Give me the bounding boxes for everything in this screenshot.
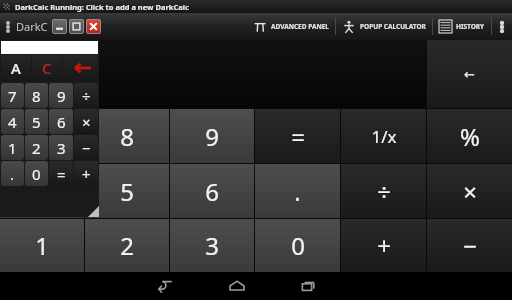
button[interactable]: C [32,55,62,81]
staticText: 7 [35,120,49,153]
button[interactable]: Home [223,272,251,300]
button[interactable]: Close [86,19,101,34]
staticText: DarkC [16,19,48,34]
staticText: 8 [120,120,134,153]
staticText: 5 [32,112,41,132]
button[interactable]: Backspace [427,40,512,108]
button[interactable]: Back [151,272,179,300]
staticText: × [82,112,91,132]
button[interactable]: Backspace [63,55,98,81]
staticText: ÷ [377,175,391,208]
button[interactable]: ÷ [341,164,426,218]
button[interactable]: 5 [25,109,48,134]
staticText: . [10,164,15,184]
button[interactable]: More options [0,13,16,40]
staticText: 3 [57,138,66,158]
button[interactable]: A [1,55,31,81]
staticText: 0 [291,229,305,262]
button[interactable]: % [427,109,512,163]
staticText: 3 [205,229,219,262]
button[interactable]: 4 [1,109,24,134]
button[interactable]: . [1,161,24,186]
button[interactable]: 0 [25,161,48,186]
staticText: 0 [32,164,41,184]
button[interactable]: 6 [170,164,254,218]
button[interactable]: 1 [1,135,24,160]
button[interactable]: × [74,109,98,134]
button[interactable]: HISTORY [433,13,491,40]
staticText: 5 [120,175,134,208]
staticText: + [377,229,391,262]
staticText: × [463,175,477,208]
button[interactable]: 9 [49,83,73,108]
button[interactable]: 8 [85,109,169,163]
button[interactable]: − [74,135,98,160]
staticText: % [460,120,480,153]
staticText: 1 [8,138,17,158]
staticText: DarkCalc Running: Click to add a new Dar… [15,2,189,12]
button[interactable]: ADVANCED PANEL [247,13,335,40]
button[interactable]: = [255,109,340,163]
button[interactable]: 6 [49,109,73,134]
button[interactable]: 7 [1,83,24,108]
staticText: POPUP CALCULATOR [360,22,426,31]
staticText: ADVANCED PANEL [271,22,329,31]
staticText: 9 [57,86,66,106]
staticText: A [11,58,21,78]
button[interactable]: + [74,161,98,186]
button[interactable]: 1/x [341,109,426,163]
staticText: 6 [57,112,66,132]
button[interactable] [0,40,426,108]
staticText: 2 [120,229,134,262]
staticText: 7 [8,86,17,106]
button[interactable]: . [255,164,340,218]
button[interactable]: = [49,161,73,186]
button[interactable]: 0 [255,219,340,272]
staticText: = [291,120,305,153]
button[interactable]: − [427,219,512,272]
button[interactable]: POPUP CALCULATOR [336,13,432,40]
button[interactable]: 3 [170,219,254,272]
staticText: . [294,175,301,208]
button[interactable]: + [341,219,426,272]
button[interactable]: 3 [49,135,73,160]
staticText: = [57,164,66,184]
button[interactable]: Restore [69,19,84,34]
staticText: 9 [205,120,219,153]
button[interactable]: 9 [170,109,254,163]
staticText: ← [464,67,475,82]
staticText: 1 [35,229,49,262]
staticText: 1/x [371,125,397,148]
staticText: − [463,229,477,262]
staticText: ÷ [82,86,91,106]
staticText: 6 [205,175,219,208]
button[interactable]: More options [492,13,512,40]
staticText: C [42,58,52,78]
staticText: HISTORY [456,22,485,31]
button[interactable]: 7 [0,109,84,163]
button[interactable]: 2 [85,219,169,272]
button[interactable]: 2 [25,135,48,160]
button[interactable]: × [427,164,512,218]
staticText: 2 [32,138,41,158]
button[interactable]: Minimize [52,19,67,34]
button[interactable]: 8 [25,83,48,108]
staticText: 4 [35,175,49,208]
button[interactable]: 1 [0,219,84,272]
button[interactable]: ÷ [74,83,98,108]
button[interactable]: Recent apps [295,272,323,300]
staticText: 8 [32,86,41,106]
staticText: + [82,164,91,184]
staticText: − [82,138,91,158]
button[interactable]: 4 [0,164,84,218]
staticText: 4 [8,112,17,132]
button[interactable]: 5 [85,164,169,218]
